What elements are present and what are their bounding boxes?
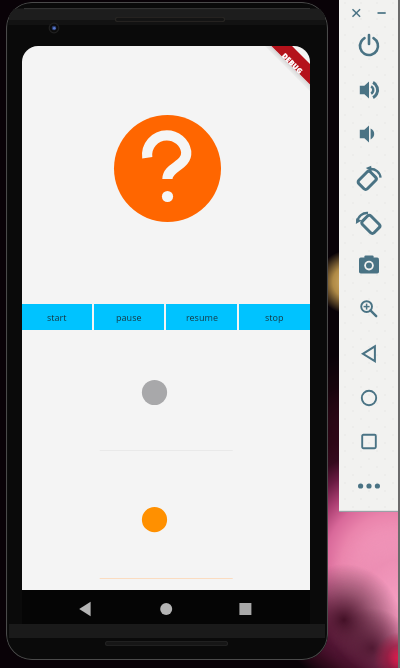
button[interactable]: stop xyxy=(239,304,310,330)
button[interactable]: resume xyxy=(166,304,237,330)
staticText: DEBUG xyxy=(279,51,305,77)
button[interactable] xyxy=(22,451,310,579)
staticText: pause xyxy=(116,311,142,323)
button[interactable]: start xyxy=(22,304,92,330)
button[interactable] xyxy=(22,331,310,451)
staticText: start xyxy=(47,311,67,323)
button[interactable]: pause xyxy=(94,304,164,330)
staticText: resume xyxy=(186,311,218,323)
staticText: stop xyxy=(265,311,284,323)
